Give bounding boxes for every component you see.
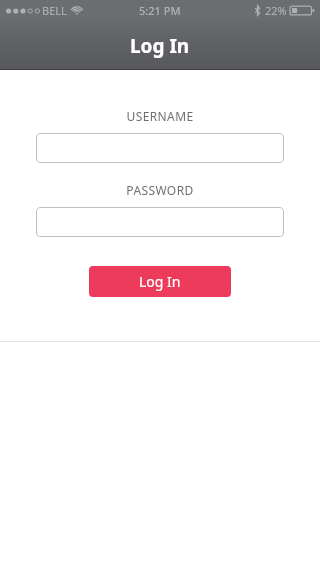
staticText: PASSWORD [0, 182, 320, 198]
staticText: 22% [265, 3, 287, 18]
staticText: BELL [42, 3, 67, 18]
button[interactable]: Log In [89, 266, 231, 297]
staticText: 5:21 PM [139, 3, 181, 18]
staticText: Log In [139, 272, 181, 291]
button[interactable] [36, 207, 284, 237]
staticText: USERNAME [0, 108, 320, 124]
staticText: Log In [130, 33, 190, 59]
button[interactable] [36, 133, 284, 163]
